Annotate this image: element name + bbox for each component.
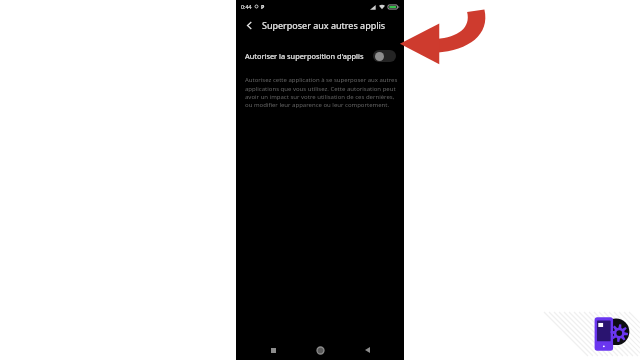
staticText: 0:44 [241, 3, 252, 10]
button[interactable]: App logo [588, 312, 632, 356]
staticText: Superposer aux autres applis [262, 19, 386, 31]
staticText: Autorisez cette application à se superpo… [245, 76, 398, 108]
staticText: Autoriser la superposition d'applis [245, 51, 364, 61]
staticText: P [261, 3, 265, 10]
button[interactable]: Home [310, 340, 330, 360]
button[interactable]: Autoriser la superposition d'applis [236, 45, 404, 67]
button[interactable]: Back [357, 340, 377, 360]
button[interactable]: Back [236, 13, 262, 37]
button[interactable]: Recent apps [263, 340, 283, 360]
